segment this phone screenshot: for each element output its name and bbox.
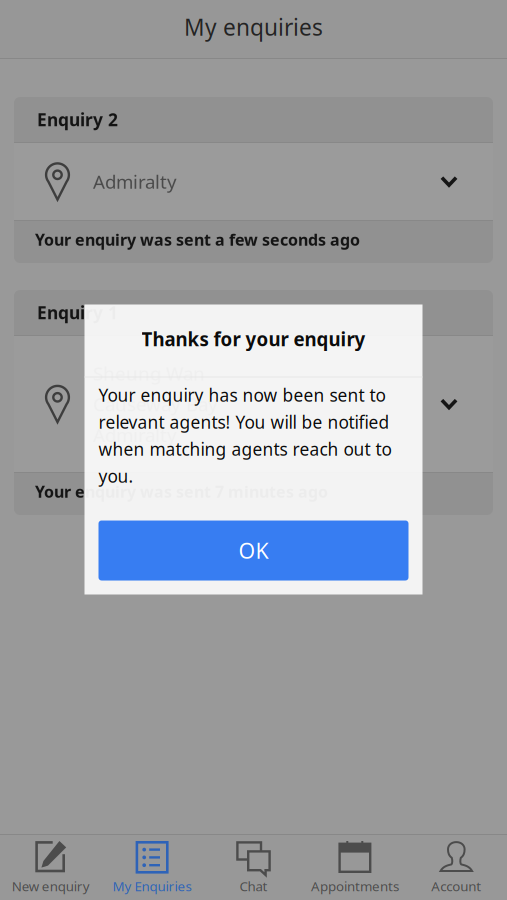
staticText: Enquiry 2 [37,108,118,131]
button[interactable]: Sheung Wan [14,336,493,472]
staticText: My enquiries [184,12,323,42]
button[interactable]: New enquiry [0,835,101,900]
button[interactable]: My Enquiries [101,835,203,900]
staticText: Appointments [311,877,399,895]
staticText: New enquiry [12,877,90,895]
staticText: Enquiry 1 [37,301,118,324]
button[interactable]: Admiralty [14,143,493,220]
staticText: Admiralty [93,422,177,447]
staticText: Chat [239,877,267,895]
button[interactable]: OK [98,520,408,580]
staticText: Thanks for your enquiry [141,327,365,351]
button[interactable]: Account [406,835,507,900]
staticText: OK [238,536,268,565]
staticText: Your enquiry was sent a few seconds ago [35,229,360,250]
button[interactable]: Chat [203,835,304,900]
button[interactable]: Appointments [304,835,406,900]
staticText: Your enquiry has now been sent to releva… [98,383,391,488]
staticText: Account [431,877,481,895]
staticText: Admiralty [93,169,177,194]
staticText: Causeway Bay [93,392,218,416]
staticText: Your enquiry was sent 7 minutes ago [35,481,328,502]
staticText: My Enquiries [113,877,192,895]
